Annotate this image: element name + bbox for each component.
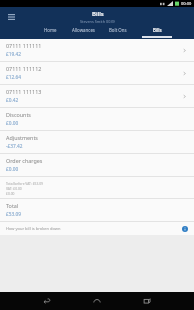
staticText: £53.09 [6, 211, 22, 218]
button[interactable]: How your bill is broken down [0, 222, 194, 235]
staticText: Stevens Smith 0039 [80, 19, 115, 24]
button[interactable]: Allowances [72, 26, 95, 39]
staticText: £0.42 [6, 97, 19, 104]
staticText: How your bill is broken down [6, 226, 182, 231]
staticText: 07111 111113 [6, 88, 42, 95]
staticText: VAT: £0.00 [6, 186, 22, 190]
staticText: 07111 111112 [6, 65, 42, 72]
button[interactable]: Bills [142, 26, 172, 39]
staticText: £12.64 [6, 74, 22, 81]
button[interactable]: Back [40, 294, 54, 308]
button[interactable]: Home [44, 26, 57, 39]
button[interactable]: 07111 111113 [0, 85, 194, 107]
button[interactable]: Discounts [0, 108, 194, 130]
button[interactable]: Order charges [0, 154, 194, 176]
staticText: 07111 111111 [6, 42, 42, 49]
staticText: Discounts [6, 111, 31, 118]
button[interactable]: Adjustments [0, 131, 194, 153]
button[interactable]: 07111 111111 [0, 39, 194, 61]
button[interactable]: Total [0, 199, 194, 221]
staticText: £0.00 [6, 120, 19, 127]
staticText: £0.00 [6, 166, 19, 173]
other: Information [182, 226, 188, 232]
button[interactable]: Bolt Ons [109, 26, 127, 39]
staticText: Total before VAT: £53.09 [6, 181, 43, 185]
staticText: Bills [153, 27, 162, 33]
staticText: -£37.42 [6, 143, 23, 150]
button[interactable]: Menu [3, 9, 19, 25]
staticText: Allowances [72, 27, 95, 33]
button[interactable]: Recent apps [140, 294, 154, 308]
staticText: Total [6, 202, 19, 209]
staticText: Bolt Ons [109, 27, 127, 33]
staticText: Order charges [6, 157, 43, 164]
staticText: Bills [92, 10, 104, 18]
staticText: £19.42 [6, 51, 22, 58]
button[interactable]: Home [90, 294, 104, 308]
button[interactable]: 07111 111112 [0, 62, 194, 84]
staticText: 00:00 [181, 1, 192, 6]
staticText: £0.00 [6, 191, 15, 195]
staticText: Adjustments [6, 134, 38, 141]
staticText: Home [44, 27, 57, 33]
